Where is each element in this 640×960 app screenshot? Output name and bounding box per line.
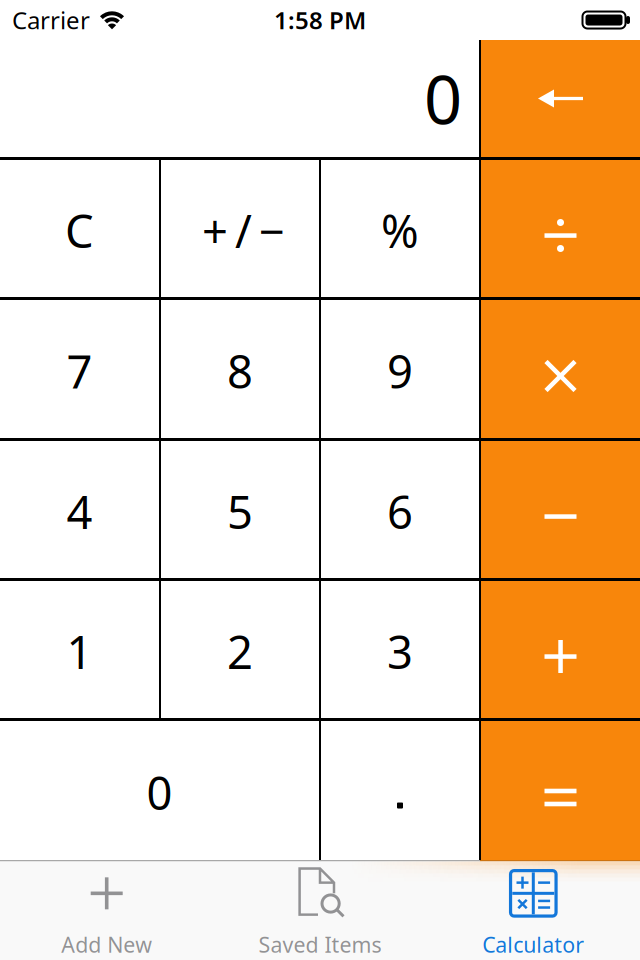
staticText: 0 [424, 54, 462, 143]
button[interactable]: Multiply [481, 300, 640, 438]
staticText: C [65, 200, 94, 261]
staticText: Add New [61, 930, 152, 959]
button[interactable]: Saved Items [213, 861, 427, 960]
button[interactable]: +/− [161, 160, 319, 297]
button[interactable]: 6 [321, 441, 479, 578]
staticText: 3 [387, 621, 413, 682]
button[interactable]: Subtract [481, 441, 640, 578]
button[interactable]: 4 [0, 441, 159, 578]
staticText: 8 [227, 341, 253, 401]
button[interactable]: 3 [321, 581, 479, 718]
staticText: % [381, 200, 419, 261]
button[interactable]: Divide [481, 160, 640, 297]
button[interactable]: % [321, 160, 479, 297]
button[interactable]: Equals [481, 721, 640, 860]
staticText: 5 [227, 481, 253, 542]
button[interactable]: 7 [0, 300, 159, 438]
button[interactable]: 1 [0, 581, 159, 718]
staticText: 2 [227, 621, 253, 682]
button[interactable]: C [0, 160, 159, 297]
staticText: 6 [387, 481, 413, 542]
button[interactable]: 2 [161, 581, 319, 718]
button[interactable]: Decimal point [321, 721, 479, 860]
button[interactable]: Backspace [481, 40, 640, 157]
staticText: Carrier [12, 4, 90, 36]
staticText: 1:58 PM [274, 4, 366, 36]
button[interactable]: 5 [161, 441, 319, 578]
button[interactable]: Add [481, 581, 640, 718]
staticText: 0 [146, 762, 172, 823]
staticText: 7 [66, 341, 92, 401]
staticText: 9 [387, 341, 413, 401]
staticText: 4 [66, 481, 92, 542]
button[interactable]: 0 [0, 721, 319, 860]
staticText: Saved Items [258, 930, 381, 959]
button[interactable]: 9 [321, 300, 479, 438]
staticText: 1 [66, 621, 92, 682]
button[interactable]: Calculator [427, 861, 640, 960]
staticText: Calculator [482, 930, 584, 959]
button[interactable]: Add New [0, 861, 213, 960]
staticText: +/− [202, 200, 285, 261]
button[interactable]: 8 [161, 300, 319, 438]
